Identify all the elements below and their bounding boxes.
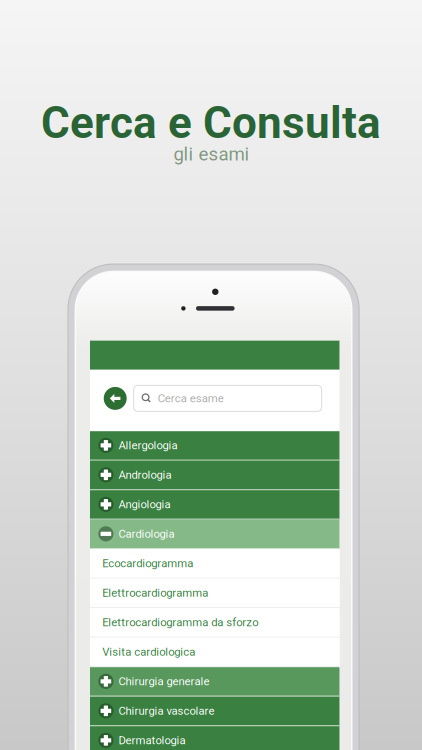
button[interactable]: Chirurgia vascolare [90,697,339,726]
button[interactable]: Cerca esame [134,385,322,411]
staticText: Angiologia [118,498,170,511]
button[interactable]: Indietro [104,387,127,410]
staticText: Cerca e Consulta [41,97,381,149]
staticText: Elettrocardiogramma da sforzo [102,616,258,629]
button[interactable]: Angiologia [90,490,339,520]
button[interactable]: Elettrocardiogramma [90,579,339,608]
staticText: Cerca esame [158,392,224,405]
button[interactable]: Ecocardiogramma [90,549,339,579]
staticText: Elettrocardiogramma [102,586,208,600]
staticText: Ecocardiogramma [102,557,193,570]
button[interactable]: Visita cardiologica [90,638,339,667]
button[interactable]: Chirurgia generale [90,667,339,697]
button[interactable]: Elettrocardiogramma da sforzo [90,608,339,638]
staticText: Andrologia [118,468,171,481]
button[interactable]: Andrologia [90,461,339,490]
staticText: gli esami [173,143,249,165]
button[interactable]: Allergologia [90,431,339,461]
button[interactable]: Cardiologia [90,520,339,549]
staticText: Allergologia [118,439,177,452]
button[interactable]: Dermatologia [90,726,339,750]
staticText: Chirurgia generale [118,675,209,688]
staticText: Visita cardiologica [102,645,195,659]
staticText: Cardiologia [118,527,174,540]
staticText: Chirurgia vascolare [118,704,214,717]
staticText: Dermatologia [118,734,185,747]
